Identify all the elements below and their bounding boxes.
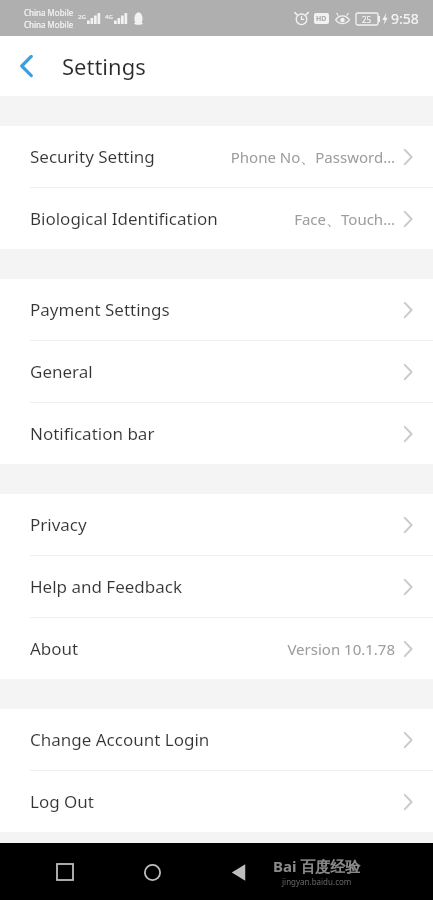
staticText: About [30,637,79,660]
staticText: Change Account Login [30,728,210,751]
button[interactable]: Change Account Login [0,709,433,770]
staticText: Settings [62,51,146,81]
button[interactable]: Home [130,850,174,894]
staticText: Notification bar [30,422,155,445]
button[interactable]: Help and Feedback [0,556,433,617]
button[interactable]: Back [0,40,52,92]
staticText: Version 10.1.78 [287,639,395,659]
staticText: Log Out [30,790,94,813]
staticText: Phone No、Password… [230,147,395,167]
staticText: China Mobile [24,7,74,18]
staticText: Privacy [30,513,87,536]
staticText: Face、Touch… [294,209,395,229]
button[interactable]: Payment Settings [0,279,433,340]
staticText: General [30,360,93,383]
button[interactable]: Log Out [0,771,433,832]
staticText: jingyan.baidu.com [282,876,352,887]
button[interactable]: Notification bar [0,403,433,464]
button[interactable]: General [0,341,433,402]
button[interactable]: Privacy [0,494,433,555]
staticText: 2G [78,13,86,21]
button[interactable]: Recent apps [43,850,87,894]
staticText: 9:58 [391,9,419,28]
staticText: Biological Identification [30,207,218,230]
staticText: Bai 百度经验 [273,856,361,876]
staticText: HD [316,14,327,24]
staticText: Security Setting [30,145,155,168]
button[interactable]: Security Setting [0,126,433,187]
button[interactable]: Biological Identification [0,188,433,249]
staticText: China Mobile [24,19,74,30]
staticText: Help and Feedback [30,575,183,598]
staticText: Payment Settings [30,298,170,321]
button[interactable]: About [0,618,433,679]
staticText: 25 [362,14,372,25]
staticText: 4G [105,13,113,21]
button[interactable]: Back [216,850,260,894]
